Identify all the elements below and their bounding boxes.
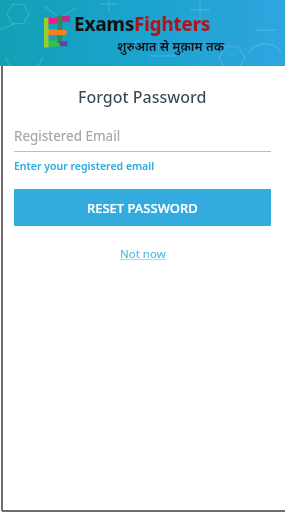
button[interactable]: Not now [114, 243, 172, 265]
staticText: Forgot Password [78, 86, 207, 108]
staticText: Not now [120, 246, 166, 262]
staticText: ExamsFighters [74, 11, 211, 37]
staticText: Registered Email [14, 127, 121, 145]
staticText: RESET PASSWORD [87, 199, 198, 217]
button[interactable]: Registered Email [14, 127, 271, 152]
button[interactable]: RESET PASSWORD [14, 189, 271, 226]
staticText: Enter your registered email [14, 159, 155, 173]
staticText: शुरुआत से मुक़ाम तक [74, 38, 267, 55]
